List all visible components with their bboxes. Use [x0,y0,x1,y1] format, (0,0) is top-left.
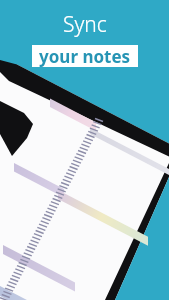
staticText: your notes [39,45,131,67]
staticText: Sync [63,10,107,39]
